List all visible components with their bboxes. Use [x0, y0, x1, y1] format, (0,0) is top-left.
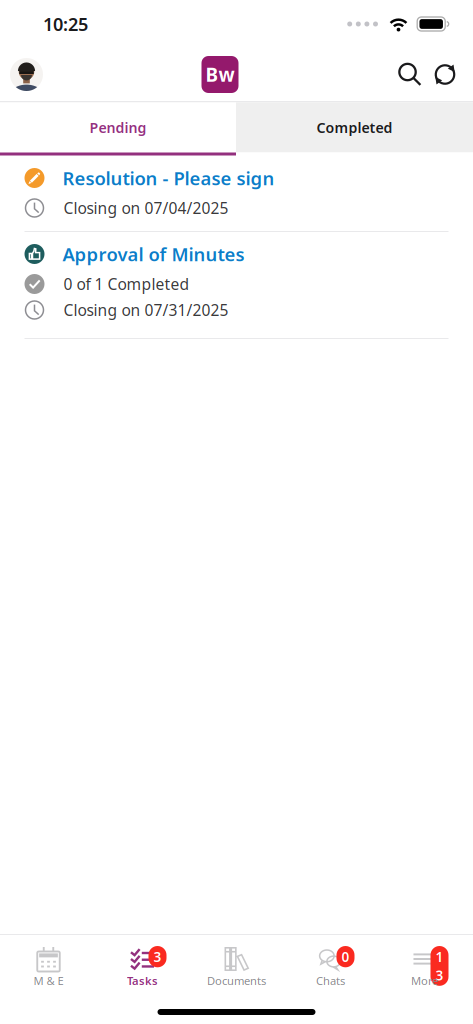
staticText: Chats: [316, 973, 345, 988]
button[interactable]: Resolution - Please sign: [24, 155, 448, 231]
staticText: 0 of 1 Completed: [63, 273, 189, 295]
staticText: Documents: [207, 973, 266, 988]
staticText: Bw: [205, 62, 234, 87]
staticText: 13: [435, 947, 443, 984]
button[interactable]: Completed: [236, 102, 473, 155]
button[interactable]: M & E: [1, 935, 95, 989]
button[interactable]: 13: [377, 935, 471, 989]
staticText: 10:25: [43, 12, 88, 36]
button[interactable]: Refresh: [423, 61, 458, 87]
button[interactable]: Profile: [0, 58, 43, 91]
staticText: 0: [341, 947, 349, 966]
staticText: Completed: [316, 118, 392, 137]
button[interactable]: 3: [95, 935, 189, 989]
button[interactable]: Search: [397, 61, 423, 87]
button[interactable]: Documents: [189, 935, 283, 989]
button[interactable]: Approval of Minutes: [24, 232, 448, 338]
button[interactable]: 0: [283, 935, 377, 989]
staticText: Tasks: [127, 973, 158, 988]
staticText: Resolution - Please sign: [62, 165, 274, 191]
staticText: More: [411, 973, 438, 988]
staticText: M & E: [33, 973, 63, 988]
staticText: Pending: [89, 118, 146, 137]
staticText: 3: [153, 947, 161, 966]
staticText: Closing on 07/04/2025: [63, 197, 228, 219]
button[interactable]: Pending: [0, 102, 236, 155]
staticText: Approval of Minutes: [62, 241, 244, 267]
staticText: Closing on 07/31/2025: [63, 299, 228, 321]
